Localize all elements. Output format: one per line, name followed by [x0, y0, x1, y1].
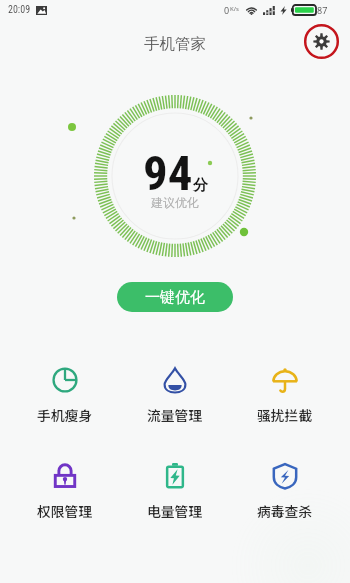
staticText: 手机管家 [144, 34, 206, 54]
button[interactable]: 骚扰拦截 [230, 367, 340, 425]
staticText: 0 [224, 4, 230, 16]
staticText: 骚扰拦截 [257, 405, 313, 425]
staticText: 电量管理 [147, 501, 203, 521]
staticText: 手机瘦身 [37, 405, 93, 425]
button[interactable]: 手机瘦身 [10, 367, 120, 425]
staticText: 病毒查杀 [257, 501, 313, 521]
staticText: 一键优化 [145, 288, 205, 307]
button[interactable]: Settings [303, 23, 340, 60]
staticText: 94 [143, 145, 193, 202]
button[interactable]: 病毒查杀 [230, 463, 340, 521]
staticText: 建议优化 [151, 195, 199, 210]
staticText: 流量管理 [147, 405, 203, 425]
staticText: 权限管理 [37, 501, 93, 521]
staticText: 分 [193, 176, 208, 195]
staticText: K/s [230, 5, 239, 13]
staticText: 87 [317, 4, 328, 16]
button[interactable]: 权限管理 [10, 463, 120, 521]
staticText: 20:09 [8, 4, 31, 16]
button[interactable]: 流量管理 [120, 367, 230, 425]
button[interactable]: 一键优化 [117, 282, 233, 312]
button[interactable]: 电量管理 [120, 463, 230, 521]
